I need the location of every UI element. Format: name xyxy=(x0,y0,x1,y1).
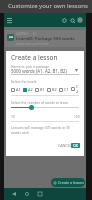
button[interactable]: Back xyxy=(9,189,18,198)
staticText: C2 xyxy=(76,84,79,94)
staticText: B2 xyxy=(52,87,57,92)
staticText: A1 xyxy=(16,87,21,92)
staticText: Select the levels xyxy=(11,79,37,84)
staticText: tap to start your lesson xyxy=(16,42,49,46)
staticText: 5000 words (A1, A2, B1, B2) xyxy=(11,68,67,74)
button[interactable]: Account xyxy=(76,16,84,24)
staticText: LEARN65 . 2h xyxy=(16,32,37,36)
button[interactable]: B1 xyxy=(34,87,46,92)
button[interactable]: Create a lesson xyxy=(51,178,85,187)
staticText: 10 xyxy=(11,115,15,119)
button[interactable]: A2 xyxy=(22,87,34,92)
button[interactable]: CANCEL xyxy=(56,141,74,150)
button[interactable]: LEARN65 . 2h xyxy=(5,30,85,47)
staticText: C1 xyxy=(64,87,69,92)
button[interactable]: Refresh xyxy=(60,16,68,24)
staticText: A2 xyxy=(28,87,33,92)
staticText: Learn65: Package 500 words xyxy=(16,36,75,42)
staticText: Customize your own lessons xyxy=(8,2,88,10)
button[interactable]: A1 xyxy=(10,87,22,92)
staticText: CANCEL xyxy=(58,143,72,148)
staticText: Create a lesson xyxy=(11,53,58,62)
button[interactable]: Search xyxy=(68,16,76,24)
staticText: OK xyxy=(73,143,79,148)
staticText: Lessons will manage 370 words in 30 word… xyxy=(11,125,73,135)
staticText: B1 xyxy=(40,87,45,92)
staticText: 100 xyxy=(74,115,80,119)
button[interactable]: Home xyxy=(22,189,31,198)
button[interactable]: C1 xyxy=(58,87,70,92)
staticText: Select the number of words to learn xyxy=(11,100,69,105)
button[interactable]: Recents xyxy=(35,189,44,198)
button[interactable]: C2 xyxy=(70,84,80,94)
button[interactable]: Menu xyxy=(5,16,14,25)
button[interactable]: Word count slider xyxy=(29,105,34,110)
staticText: Name or pick a package xyxy=(11,64,50,69)
staticText: Create a lesson xyxy=(58,180,84,185)
button[interactable]: B2 xyxy=(46,87,58,92)
button[interactable]: OK xyxy=(71,143,80,148)
